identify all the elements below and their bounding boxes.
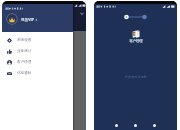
staticText: 客户经理	[129, 39, 143, 43]
staticText: 信息通知	[17, 71, 32, 76]
button[interactable]: 信息通知	[2, 68, 73, 79]
staticText: 业务统计	[17, 49, 32, 54]
button[interactable]: 尊贵VIP ›	[2, 13, 73, 25]
button[interactable]: 客户经理	[2, 57, 73, 68]
button[interactable]: 业务统计	[2, 46, 73, 57]
staticText: 客户经理	[17, 60, 32, 65]
staticText: 长按图标可调整	[125, 75, 147, 79]
button[interactable]: 系统设置	[2, 35, 73, 46]
staticText: 系统设置	[17, 38, 32, 43]
staticText: 尊贵VIP ›	[21, 17, 37, 22]
other: More	[80, 12, 84, 16]
button[interactable]: 客户经理	[127, 28, 145, 45]
